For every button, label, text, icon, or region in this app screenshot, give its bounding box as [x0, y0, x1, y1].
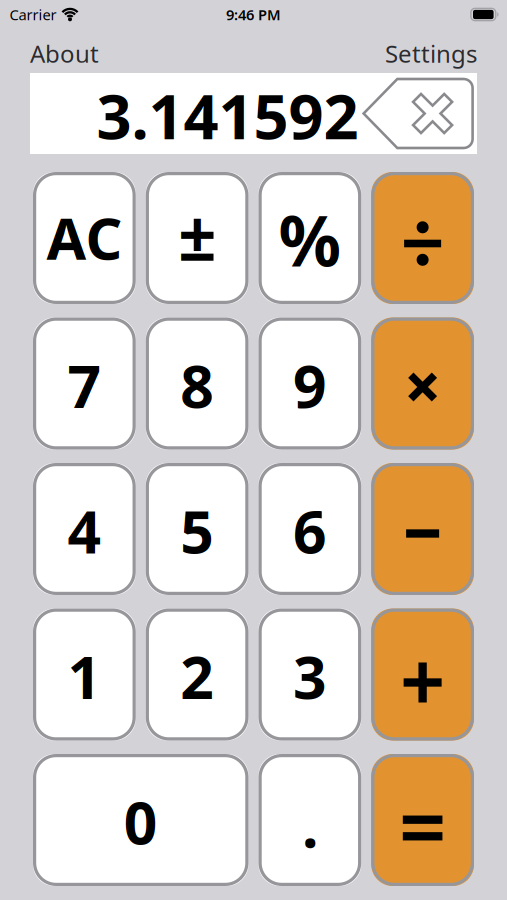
- staticText: 6: [293, 492, 327, 570]
- button[interactable]: 4: [33, 463, 136, 595]
- button[interactable]: 2: [146, 608, 249, 740]
- staticText: 8: [180, 346, 214, 424]
- button[interactable]: [371, 172, 474, 304]
- staticText: 4: [67, 492, 101, 570]
- staticText: 2: [180, 637, 214, 715]
- staticText: 7: [67, 346, 101, 424]
- staticText: 9:46 PM: [226, 5, 281, 24]
- button[interactable]: [371, 317, 474, 449]
- button[interactable]: [371, 463, 474, 595]
- button[interactable]: 6: [258, 463, 361, 595]
- staticText: Carrier: [9, 5, 56, 24]
- staticText: 5: [180, 492, 214, 570]
- button[interactable]: 3: [258, 608, 361, 740]
- button[interactable]: Settings: [385, 35, 477, 67]
- staticText: 9: [293, 346, 327, 424]
- staticText: 1: [67, 637, 101, 715]
- button[interactable]: 0: [33, 754, 248, 886]
- button[interactable]: 7: [33, 317, 136, 449]
- button[interactable]: 5: [146, 463, 249, 595]
- staticText: 3.141592: [97, 75, 359, 156]
- staticText: Settings: [385, 38, 477, 69]
- staticText: About: [30, 38, 99, 69]
- staticText: AC: [46, 199, 122, 275]
- button[interactable]: .: [258, 754, 361, 886]
- staticText: 3: [293, 637, 327, 715]
- staticText: %: [278, 193, 341, 286]
- button[interactable]: Delete: [364, 79, 473, 148]
- button[interactable]: [371, 608, 474, 740]
- button[interactable]: 8: [146, 317, 249, 449]
- button[interactable]: About: [30, 35, 99, 67]
- button[interactable]: ±: [146, 172, 249, 304]
- staticText: .: [302, 786, 318, 864]
- staticText: 0: [124, 783, 158, 861]
- staticText: ±: [178, 191, 216, 279]
- button[interactable]: 9: [258, 317, 361, 449]
- button[interactable]: %: [258, 172, 361, 304]
- button[interactable]: AC: [33, 172, 136, 304]
- button[interactable]: 1: [33, 608, 136, 740]
- button[interactable]: [371, 754, 474, 886]
